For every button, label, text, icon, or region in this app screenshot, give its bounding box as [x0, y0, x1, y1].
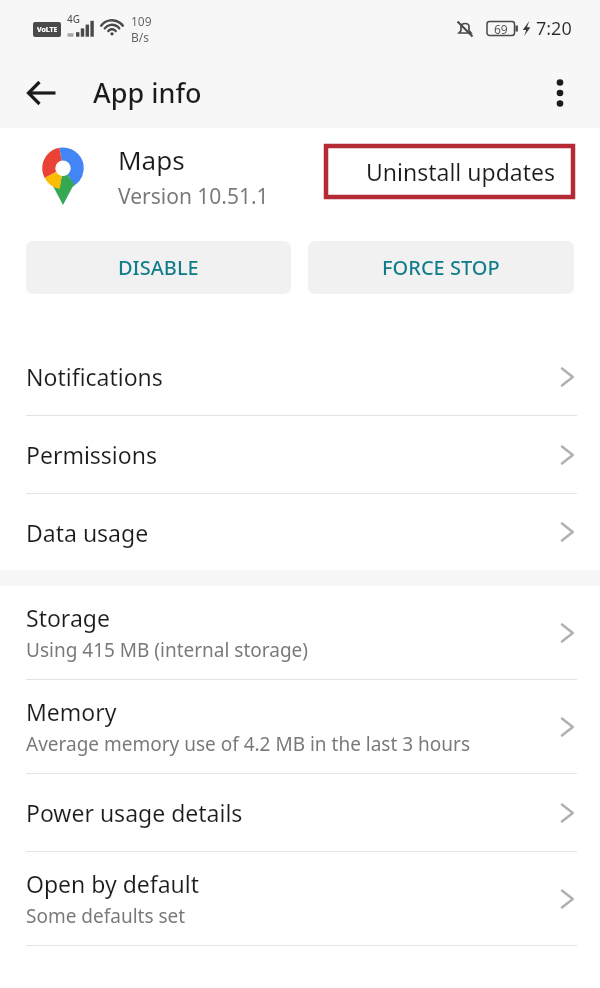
staticText: 109: [131, 13, 152, 29]
staticText: B/s: [131, 29, 150, 45]
staticText: Uninstall updates: [366, 156, 555, 187]
button[interactable]: Open by default: [0, 852, 600, 945]
staticText: 4G: [67, 12, 80, 26]
staticText: 7:20: [536, 16, 572, 41]
staticText: Storage: [26, 602, 110, 633]
button[interactable]: Permissions: [0, 416, 600, 493]
staticText: App info: [93, 74, 202, 111]
staticText: FORCE STOP: [382, 254, 500, 281]
staticText: Memory: [26, 696, 117, 727]
staticText: Permissions: [26, 439, 157, 470]
button[interactable]: Notifications: [0, 338, 600, 415]
staticText: Data usage: [26, 517, 149, 548]
button[interactable]: Storage: [0, 586, 600, 679]
staticText: Using 415 MB (internal storage): [26, 637, 309, 663]
staticText: VoLTE: [37, 25, 58, 35]
staticText: Notifications: [26, 361, 163, 392]
staticText: 69: [494, 21, 508, 37]
staticText: Open by default: [26, 868, 200, 899]
button[interactable]: More options: [536, 69, 584, 117]
staticText: Some defaults set: [26, 903, 186, 929]
staticText: Version 10.51.1: [118, 182, 269, 211]
staticText: Maps: [118, 142, 185, 177]
button[interactable]: FORCE STOP: [308, 241, 574, 294]
staticText: Power usage details: [26, 797, 243, 828]
button[interactable]: Back: [15, 66, 69, 120]
button[interactable]: Uninstall updates: [331, 131, 600, 211]
button[interactable]: Power usage details: [0, 774, 600, 851]
button[interactable]: Data usage: [0, 494, 600, 570]
staticText: DISABLE: [118, 254, 199, 281]
button[interactable]: DISABLE: [26, 241, 291, 294]
staticText: Average memory use of 4.2 MB in the last…: [26, 731, 470, 757]
button[interactable]: Memory: [0, 680, 600, 773]
